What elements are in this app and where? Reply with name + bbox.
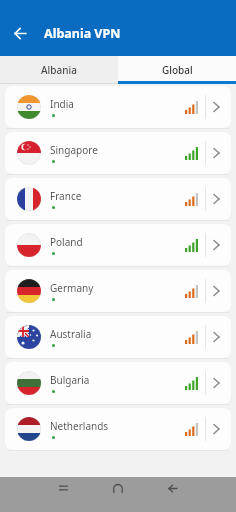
staticText: India [50,97,74,111]
button[interactable]: Albania [0,56,118,84]
button[interactable]: Singapore [5,132,231,174]
button[interactable]: Poland [5,224,231,266]
button[interactable] [106,482,130,494]
button[interactable]: Germany [5,270,231,312]
button[interactable]: France [5,178,231,220]
button[interactable]: Australia [5,316,231,358]
staticText: Albania [41,63,77,77]
button[interactable]: Global [118,56,236,84]
button[interactable] [51,482,75,494]
staticText: Poland [50,235,83,249]
staticText: Netherlands [50,419,109,433]
staticText: Global [162,63,193,77]
button[interactable]: Bulgaria [5,362,231,404]
staticText: Albania VPN [44,25,121,42]
staticText: Singapore [50,143,98,157]
staticText: Germany [50,281,94,295]
button[interactable]: Netherlands [5,408,231,450]
staticText: France [50,189,82,203]
button[interactable] [161,482,185,494]
button[interactable]: India [5,86,231,128]
staticText: Australia [50,327,92,341]
staticText: Bulgaria [50,373,90,387]
button[interactable] [0,13,40,53]
